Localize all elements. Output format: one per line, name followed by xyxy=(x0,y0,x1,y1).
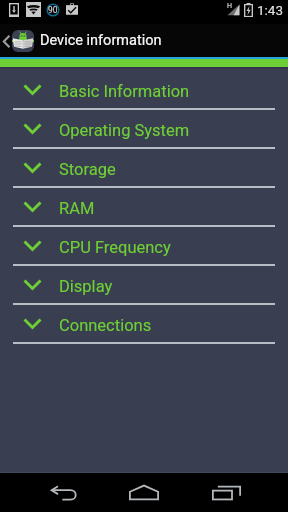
staticText: Connections xyxy=(59,316,152,335)
staticText: Operating System xyxy=(59,121,190,140)
button[interactable]: Operating System xyxy=(0,110,288,149)
staticText: 1:43 xyxy=(257,2,284,18)
staticText: RAM xyxy=(59,199,95,218)
button[interactable]: Display xyxy=(0,266,288,305)
staticText: CPU Frequency xyxy=(59,238,171,257)
button[interactable]: CPU Frequency xyxy=(0,227,288,266)
button[interactable]: Basic Information xyxy=(0,71,288,110)
staticText: 90 xyxy=(48,5,58,15)
button[interactable]: Recent apps xyxy=(192,473,288,512)
staticText: Basic Information xyxy=(59,82,190,101)
staticText: H xyxy=(227,2,232,10)
button[interactable]: Storage xyxy=(0,149,288,188)
button[interactable]: RAM xyxy=(0,188,288,227)
button[interactable]: Back xyxy=(0,473,96,512)
staticText: Display xyxy=(59,277,113,296)
button[interactable]: Connections xyxy=(0,305,288,344)
staticText: Device information xyxy=(40,32,162,49)
button[interactable]: Navigate up xyxy=(0,30,34,52)
button[interactable]: Home xyxy=(96,473,192,512)
staticText: Storage xyxy=(59,160,116,179)
